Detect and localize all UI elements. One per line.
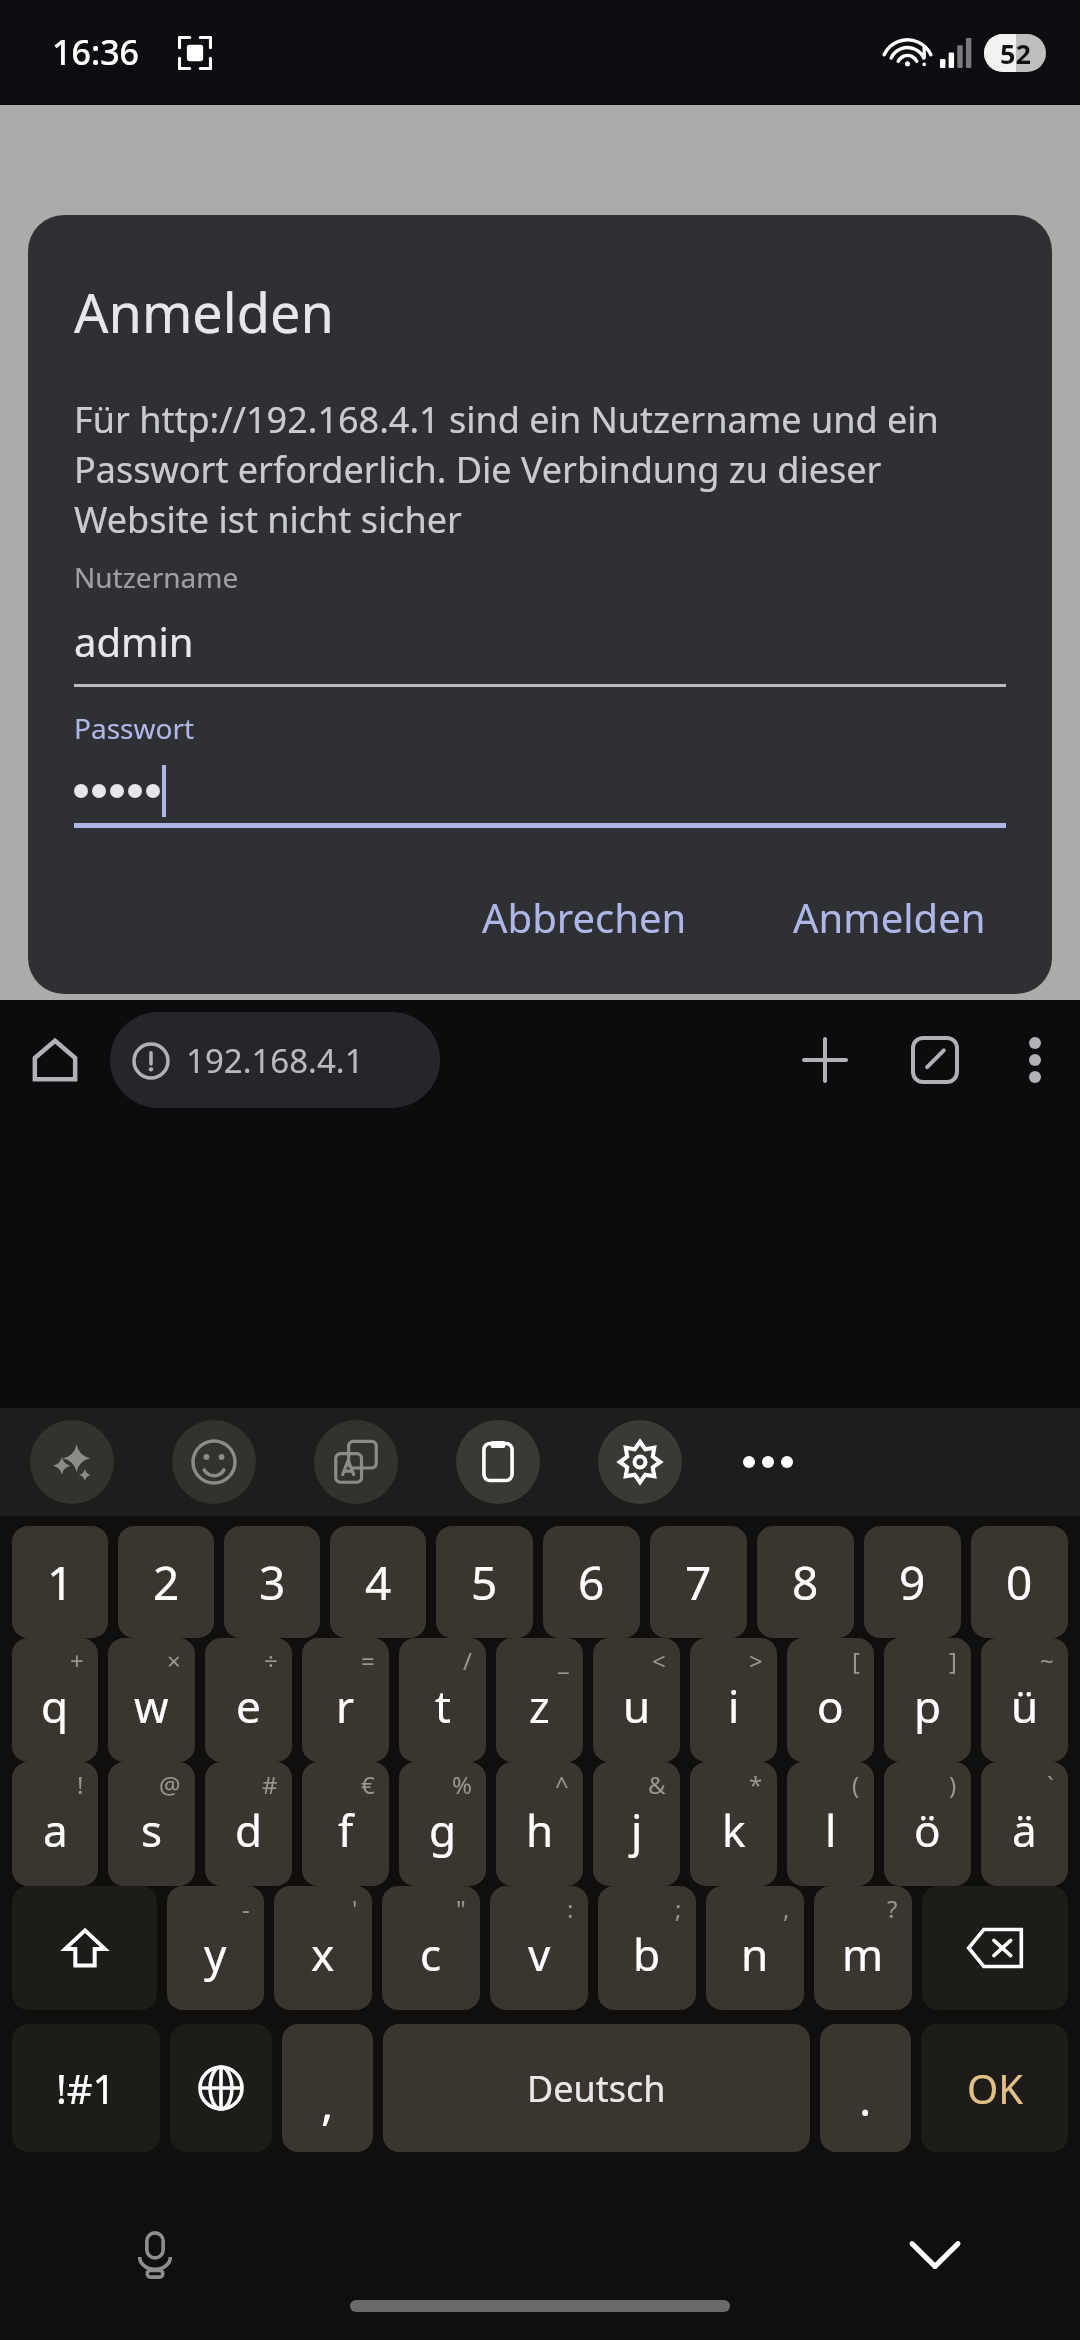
button[interactable]: ~	[981, 1638, 1068, 1762]
staticText: *	[749, 1768, 763, 1801]
button[interactable]: Change language	[170, 2024, 272, 2152]
button[interactable]: )	[884, 1762, 971, 1886]
button[interactable]: *	[690, 1762, 777, 1886]
button[interactable]: -	[167, 1886, 264, 2010]
button[interactable]: @	[108, 1762, 195, 1886]
staticText: Passwort	[74, 709, 195, 747]
staticText: Für http://192.168.4.1 sind ein Nutzerna…	[74, 395, 1006, 544]
staticText: t	[435, 1676, 451, 1736]
button[interactable]: Clipboard	[456, 1420, 540, 1504]
button[interactable]: €	[302, 1762, 389, 1886]
button[interactable]: Deutsch	[383, 2024, 810, 2152]
button[interactable]: ×	[108, 1638, 195, 1762]
staticText: n	[741, 1924, 769, 1984]
button[interactable]: New tab	[770, 1000, 880, 1120]
button[interactable]: More	[728, 1422, 808, 1502]
button[interactable]: 5	[436, 1526, 533, 1638]
button[interactable]: 7	[650, 1526, 747, 1638]
button[interactable]: 192.168.4.1	[110, 1012, 440, 1108]
button[interactable]: !#1	[12, 2024, 160, 2152]
button[interactable]: ]	[884, 1638, 971, 1762]
staticText: ä	[1012, 1800, 1037, 1860]
button[interactable]: <	[593, 1638, 680, 1762]
button[interactable]: _	[496, 1638, 583, 1762]
staticText: Anmelden	[793, 890, 986, 944]
button[interactable]: "	[382, 1886, 480, 2010]
button[interactable]: '	[274, 1886, 372, 2010]
staticText: !	[77, 1768, 84, 1801]
button[interactable]: ?	[814, 1886, 912, 2010]
staticText: a	[43, 1800, 68, 1860]
staticText: admin	[74, 614, 194, 668]
button[interactable]: Backspace	[922, 1886, 1068, 2010]
button[interactable]: 4	[330, 1526, 426, 1638]
button[interactable]: More options	[990, 1000, 1080, 1120]
staticText: 8	[792, 1551, 819, 1614]
button[interactable]: Assist	[30, 1420, 114, 1504]
staticText: #	[262, 1768, 278, 1801]
staticText: Deutsch	[527, 2064, 666, 2113]
button[interactable]: >	[690, 1638, 777, 1762]
staticText: 192.168.4.1	[186, 1038, 364, 1083]
staticText: Anmelden	[74, 275, 334, 349]
staticText: d	[235, 1800, 263, 1860]
button[interactable]: [	[787, 1638, 874, 1762]
button[interactable]: +	[12, 1638, 98, 1762]
button[interactable]: 6	[543, 1526, 640, 1638]
staticText: !#1	[56, 2061, 116, 2115]
button[interactable]: #	[205, 1762, 292, 1886]
button[interactable]: Settings	[598, 1420, 682, 1504]
button[interactable]: ,	[282, 2024, 373, 2152]
staticText: ~	[1040, 1644, 1054, 1677]
button[interactable]: Home	[0, 1000, 110, 1120]
button[interactable]: Emoji	[172, 1420, 256, 1504]
staticText: z	[529, 1676, 550, 1736]
button[interactable]: =	[302, 1638, 389, 1762]
button[interactable]: 9	[864, 1526, 961, 1638]
button[interactable]: %	[399, 1762, 486, 1886]
staticText: /	[463, 1644, 472, 1677]
button[interactable]: 1	[12, 1526, 108, 1638]
staticText: ×	[167, 1644, 181, 1677]
staticText: ;	[675, 1892, 682, 1925]
button[interactable]: 8	[757, 1526, 854, 1638]
button[interactable]: ;	[598, 1886, 696, 2010]
staticText: j	[631, 1800, 643, 1860]
staticText: h	[526, 1800, 554, 1860]
button[interactable]: 0	[971, 1526, 1068, 1638]
button[interactable]: admin	[74, 614, 1006, 687]
button[interactable]: `	[981, 1762, 1068, 1886]
button[interactable]: Shift	[12, 1886, 157, 2010]
button[interactable]: 3	[224, 1526, 320, 1638]
staticText: c	[420, 1924, 442, 1984]
button[interactable]: Hide keyboard	[890, 2210, 980, 2300]
button[interactable]: 2	[118, 1526, 214, 1638]
button[interactable]: /	[399, 1638, 486, 1762]
staticText: .	[859, 2067, 872, 2130]
button[interactable]: OK	[921, 2024, 1068, 2152]
button[interactable]: &	[593, 1762, 680, 1886]
staticText: +	[70, 1644, 84, 1677]
button[interactable]: Voice input	[110, 2210, 200, 2300]
button[interactable]: :	[490, 1886, 588, 2010]
button[interactable]: Abbrechen	[462, 874, 707, 960]
staticText: u	[623, 1676, 651, 1736]
button[interactable]: ,	[706, 1886, 804, 2010]
button[interactable]: ^	[496, 1762, 583, 1886]
staticText: :	[567, 1892, 574, 1925]
button[interactable]: Tabs	[880, 1000, 990, 1120]
staticText: r	[336, 1676, 355, 1736]
button[interactable]: ÷	[205, 1638, 292, 1762]
button[interactable]: !	[12, 1762, 98, 1886]
button[interactable]: Translate	[314, 1420, 398, 1504]
staticText: 5	[471, 1551, 498, 1614]
button[interactable]	[74, 765, 1006, 828]
staticText: ö	[914, 1800, 941, 1860]
staticText: <	[652, 1644, 666, 1677]
button[interactable]: Anmelden	[773, 874, 1006, 960]
staticText: o	[817, 1676, 844, 1736]
staticText: ,	[321, 2071, 334, 2134]
button[interactable]: .	[820, 2024, 911, 2152]
button[interactable]: (	[787, 1762, 874, 1886]
staticText: [	[852, 1644, 860, 1677]
